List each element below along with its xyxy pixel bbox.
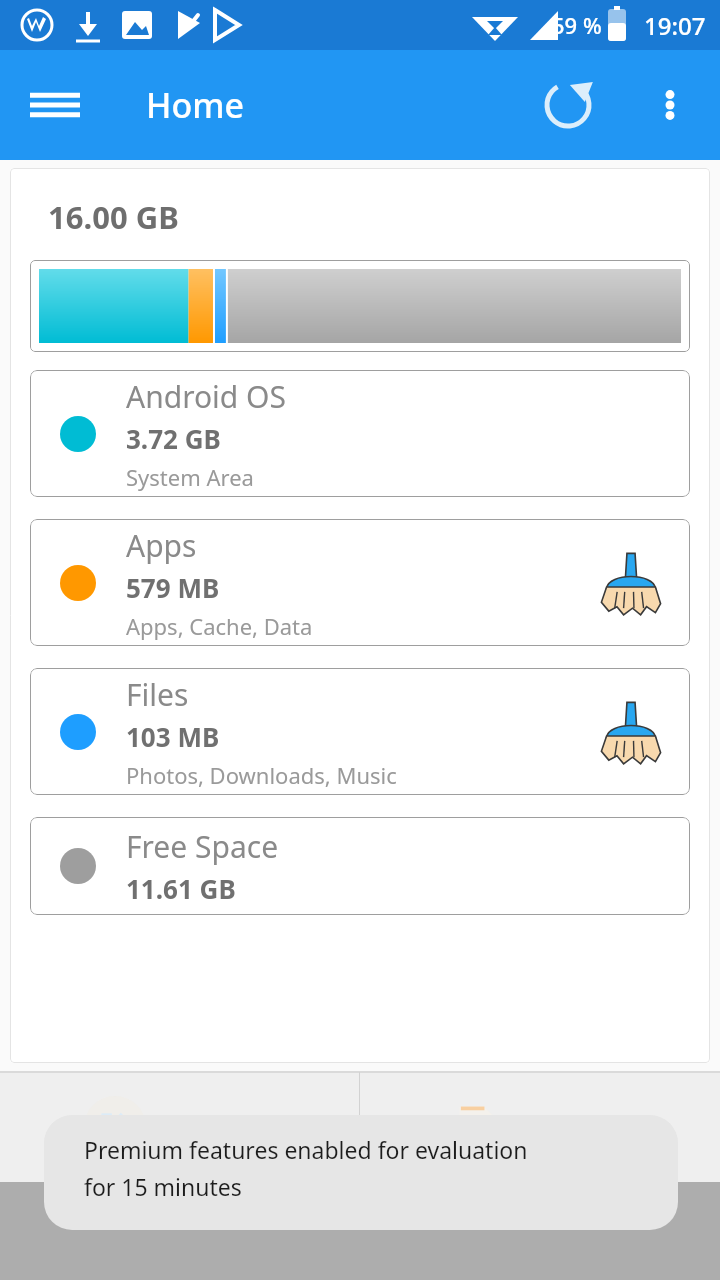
staticText: Premium features enabled for evaluation (84, 1134, 528, 1165)
staticText: Photos, Downloads, Music (126, 760, 397, 790)
staticText: 3.72 GB (126, 421, 221, 456)
button[interactable]: Refresh (540, 77, 596, 133)
staticText: WIDGETS (156, 1109, 276, 1146)
staticText: 59 % (552, 10, 602, 40)
button[interactable]: Android OS (30, 370, 690, 497)
staticText: Free Space (126, 826, 279, 867)
staticText: 11.61 GB (126, 871, 236, 906)
staticText: Android OS (126, 376, 286, 417)
staticText: System Area (126, 462, 254, 492)
button[interactable]: Free Space (30, 817, 690, 915)
button[interactable]: Clean (594, 695, 668, 769)
button[interactable]: WIDGETS (0, 1072, 359, 1182)
button[interactable]: ANALYZE (360, 1072, 720, 1182)
button[interactable]: Menu (26, 76, 84, 134)
staticText: Apps (126, 525, 197, 566)
staticText: 19:07 (644, 9, 706, 42)
staticText: Files (126, 674, 189, 715)
button[interactable]: Apps (30, 519, 690, 646)
staticText: for 15 minutes (84, 1171, 242, 1202)
staticText: Home (146, 82, 244, 128)
staticText: ANALYZE (518, 1109, 635, 1146)
button[interactable]: More options (644, 79, 696, 131)
button[interactable]: Clean (594, 546, 668, 620)
staticText: Apps, Cache, Data (126, 611, 313, 641)
staticText: 103 MB (126, 719, 220, 754)
staticText: 16.00 GB (48, 196, 179, 238)
button[interactable]: Files (30, 668, 690, 795)
staticText: 579 MB (126, 570, 220, 605)
